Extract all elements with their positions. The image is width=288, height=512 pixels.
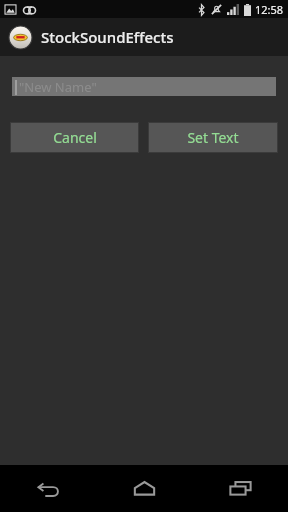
staticText: "New Name"	[19, 78, 97, 96]
button[interactable]: Cancel	[11, 123, 138, 152]
staticText: StockSoundEffects	[41, 27, 174, 47]
staticText: Set Text	[187, 128, 239, 147]
button[interactable]: Set Text	[149, 123, 277, 152]
button[interactable]: Recent apps	[192, 465, 288, 512]
button[interactable]: Back	[0, 465, 96, 512]
button[interactable]: "New Name"	[12, 77, 276, 96]
staticText: 12:58	[255, 2, 284, 17]
staticText: Cancel	[53, 128, 97, 147]
button[interactable]: Home	[96, 465, 192, 512]
